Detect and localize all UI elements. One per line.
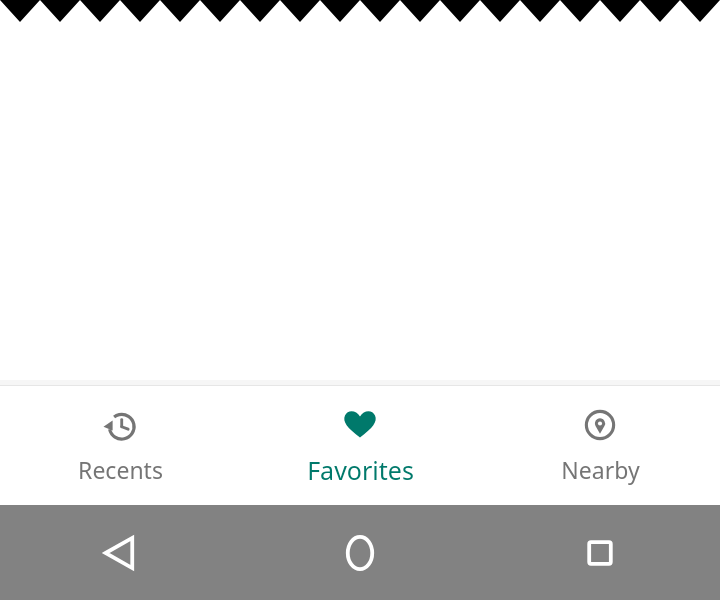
button[interactable]: Recent apps (572, 525, 628, 581)
button[interactable]: Favorites (240, 386, 480, 505)
button[interactable]: Back (92, 525, 148, 581)
staticText: Favorites (307, 453, 414, 487)
button[interactable]: Nearby (480, 386, 720, 505)
button[interactable]: Home (332, 525, 388, 581)
button[interactable]: Recents (0, 386, 240, 505)
staticText: Nearby (561, 454, 640, 485)
staticText: Recents (78, 454, 163, 485)
